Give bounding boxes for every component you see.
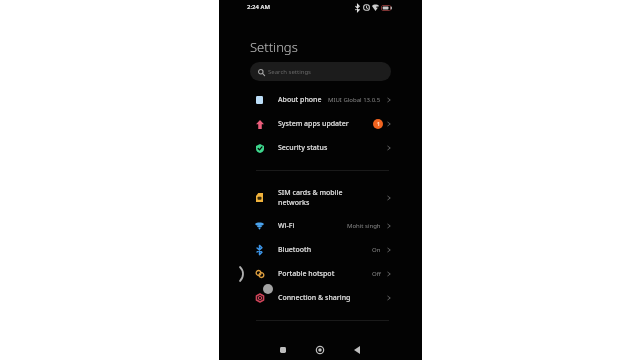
staticText: 1	[377, 121, 380, 128]
staticText: Search settings	[268, 68, 311, 76]
staticText: 2:24 AM	[247, 3, 270, 11]
button[interactable]: Security status	[219, 136, 422, 160]
button[interactable]: System apps updater	[219, 112, 422, 136]
button[interactable]: SIM cards & mobile	[219, 183, 422, 212]
staticText: Portable hotspot	[278, 269, 335, 279]
button[interactable]: Connection & sharing	[219, 286, 422, 310]
staticText: Bluetooth	[278, 245, 312, 255]
button[interactable]: Search settings	[250, 62, 391, 81]
button[interactable]: About phone	[219, 88, 422, 112]
button[interactable]: Recent apps	[275, 342, 291, 358]
staticText: Settings	[250, 38, 298, 56]
button[interactable]: Back	[349, 342, 365, 358]
button[interactable]: Bluetooth	[219, 238, 422, 262]
staticText: Mohit singh	[347, 222, 381, 230]
staticText: About phone	[278, 95, 322, 105]
staticText: Connection & sharing	[278, 293, 351, 303]
button[interactable]: Portable hotspot	[219, 262, 422, 286]
staticText: On	[372, 246, 381, 254]
button[interactable]: Wi-Fi	[219, 214, 422, 238]
staticText: MIUI Global 13.0.5	[328, 96, 381, 104]
staticText: SIM cards & mobile	[278, 188, 343, 198]
staticText: networks	[278, 198, 310, 208]
button[interactable]: Home	[312, 342, 328, 358]
staticText: System apps updater	[278, 119, 349, 129]
staticText: Wi-Fi	[278, 221, 295, 231]
staticText: Off	[372, 270, 381, 278]
staticText: Security status	[278, 143, 328, 153]
